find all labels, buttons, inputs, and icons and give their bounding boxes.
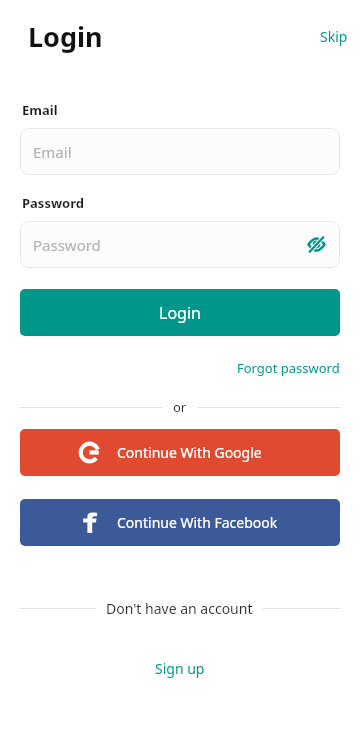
staticText: Password: [22, 194, 84, 212]
staticText: Sign up: [155, 659, 205, 678]
button[interactable]: Login: [20, 289, 340, 336]
button[interactable]: Email: [20, 128, 340, 175]
staticText: Continue With Facebook: [117, 513, 278, 532]
staticText: Continue With Google: [117, 443, 262, 462]
staticText: Forgot password: [237, 359, 340, 377]
staticText: Login: [28, 18, 103, 55]
staticText: Email: [33, 142, 72, 162]
staticText: Login: [159, 302, 201, 324]
staticText: Skip: [320, 27, 348, 46]
button[interactable]: Forgot password: [217, 354, 360, 382]
button[interactable]: Skip: [308, 21, 360, 52]
button[interactable]: Continue With Google: [20, 429, 340, 476]
staticText: Password: [33, 235, 101, 255]
button[interactable]: Continue With Facebook: [20, 499, 340, 546]
button[interactable]: Password: [20, 221, 340, 268]
staticText: or: [173, 398, 187, 416]
staticText: Don't have an account: [106, 599, 253, 618]
button[interactable]: Show password: [301, 229, 332, 260]
button[interactable]: Sign up: [139, 654, 221, 683]
staticText: Email: [22, 101, 58, 119]
